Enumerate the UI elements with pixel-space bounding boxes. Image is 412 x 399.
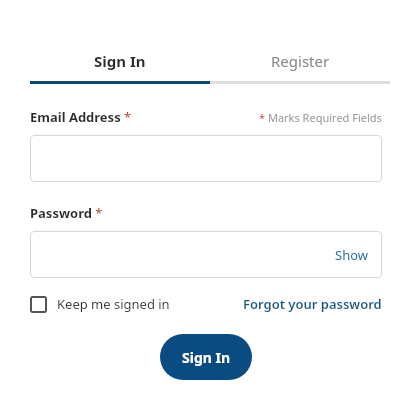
staticText: Email Address * (30, 108, 132, 126)
button[interactable]: Show (321, 234, 382, 276)
button[interactable]: Forgot your password (243, 295, 382, 313)
button[interactable]: Sign In (30, 38, 210, 81)
button[interactable]: Password input (30, 231, 382, 278)
staticText: Forgot your password (243, 295, 382, 313)
staticText: Sign In (94, 51, 146, 71)
staticText: Show (335, 246, 368, 264)
staticText: Password * (30, 204, 103, 222)
button[interactable]: Keep me signed in (30, 295, 170, 313)
staticText: * Marks Required Fields (259, 110, 382, 125)
button[interactable]: Register (210, 38, 390, 81)
button[interactable]: Email Address input (30, 135, 382, 182)
staticText: Sign In (182, 348, 231, 367)
button[interactable]: Sign In (160, 334, 252, 380)
staticText: Keep me signed in (57, 295, 170, 313)
staticText: Register (271, 51, 330, 71)
